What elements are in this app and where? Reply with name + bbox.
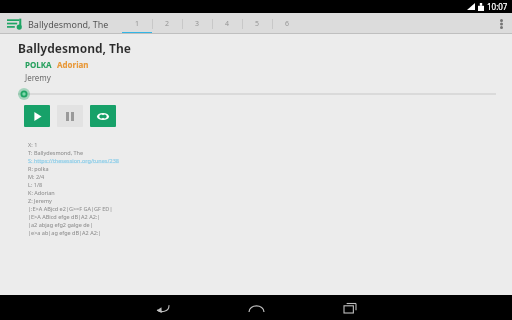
staticText: R: polka bbox=[28, 165, 49, 172]
button[interactable]: Pause bbox=[57, 105, 83, 127]
button[interactable]: 4 bbox=[212, 13, 242, 34]
button[interactable]: 6 bbox=[272, 13, 302, 34]
staticText: K: Adorian bbox=[28, 189, 55, 196]
staticText: 6 bbox=[285, 19, 290, 29]
staticText: S: https://thesession.org/tunes/238 bbox=[28, 157, 119, 164]
staticText: 4 bbox=[225, 19, 230, 29]
staticText: Ballydesmond, The bbox=[18, 40, 131, 56]
staticText: Ballydesmond, The bbox=[28, 18, 109, 30]
staticText: M: 2/4 bbox=[28, 173, 45, 180]
button[interactable]: More options bbox=[490, 13, 512, 34]
staticText: POLKA bbox=[25, 59, 52, 70]
button[interactable]: Playback position bbox=[18, 87, 496, 101]
staticText: |a2 abjag efg2 galge de| bbox=[28, 221, 93, 228]
staticText: 2 bbox=[165, 19, 170, 29]
button[interactable]: 3 bbox=[182, 13, 212, 34]
button[interactable]: Recent apps bbox=[327, 295, 373, 320]
button[interactable]: Back bbox=[139, 295, 185, 320]
staticText: T: Ballydesmond, The bbox=[28, 149, 84, 156]
staticText: 10:07 bbox=[487, 1, 508, 12]
button[interactable]: App logo, navigate up bbox=[5, 14, 25, 34]
staticText: |e>a ab|ag efge dB|A2 A2:| bbox=[28, 229, 102, 236]
staticText: |E>A ABicd efge dB|A2 A2:| bbox=[28, 213, 101, 220]
button[interactable]: 5 bbox=[242, 13, 272, 34]
staticText: |:E>A ABjcd e2|G>=F GA|GF ED| bbox=[28, 205, 113, 212]
button[interactable]: Play bbox=[24, 105, 50, 127]
staticText: Adorian bbox=[57, 59, 89, 70]
staticText: X: 1 bbox=[28, 141, 38, 148]
staticText: 1 bbox=[135, 19, 140, 29]
staticText: Jeremy bbox=[25, 72, 51, 83]
staticText: Z: Jeremy bbox=[28, 197, 52, 204]
button[interactable]: Home bbox=[233, 295, 279, 320]
staticText: L: 1/8 bbox=[28, 181, 43, 188]
button[interactable]: 1 bbox=[122, 13, 152, 34]
staticText: 5 bbox=[255, 19, 260, 29]
button[interactable]: 2 bbox=[152, 13, 182, 34]
staticText: 3 bbox=[195, 19, 200, 29]
button[interactable]: Metronome bbox=[90, 105, 116, 127]
